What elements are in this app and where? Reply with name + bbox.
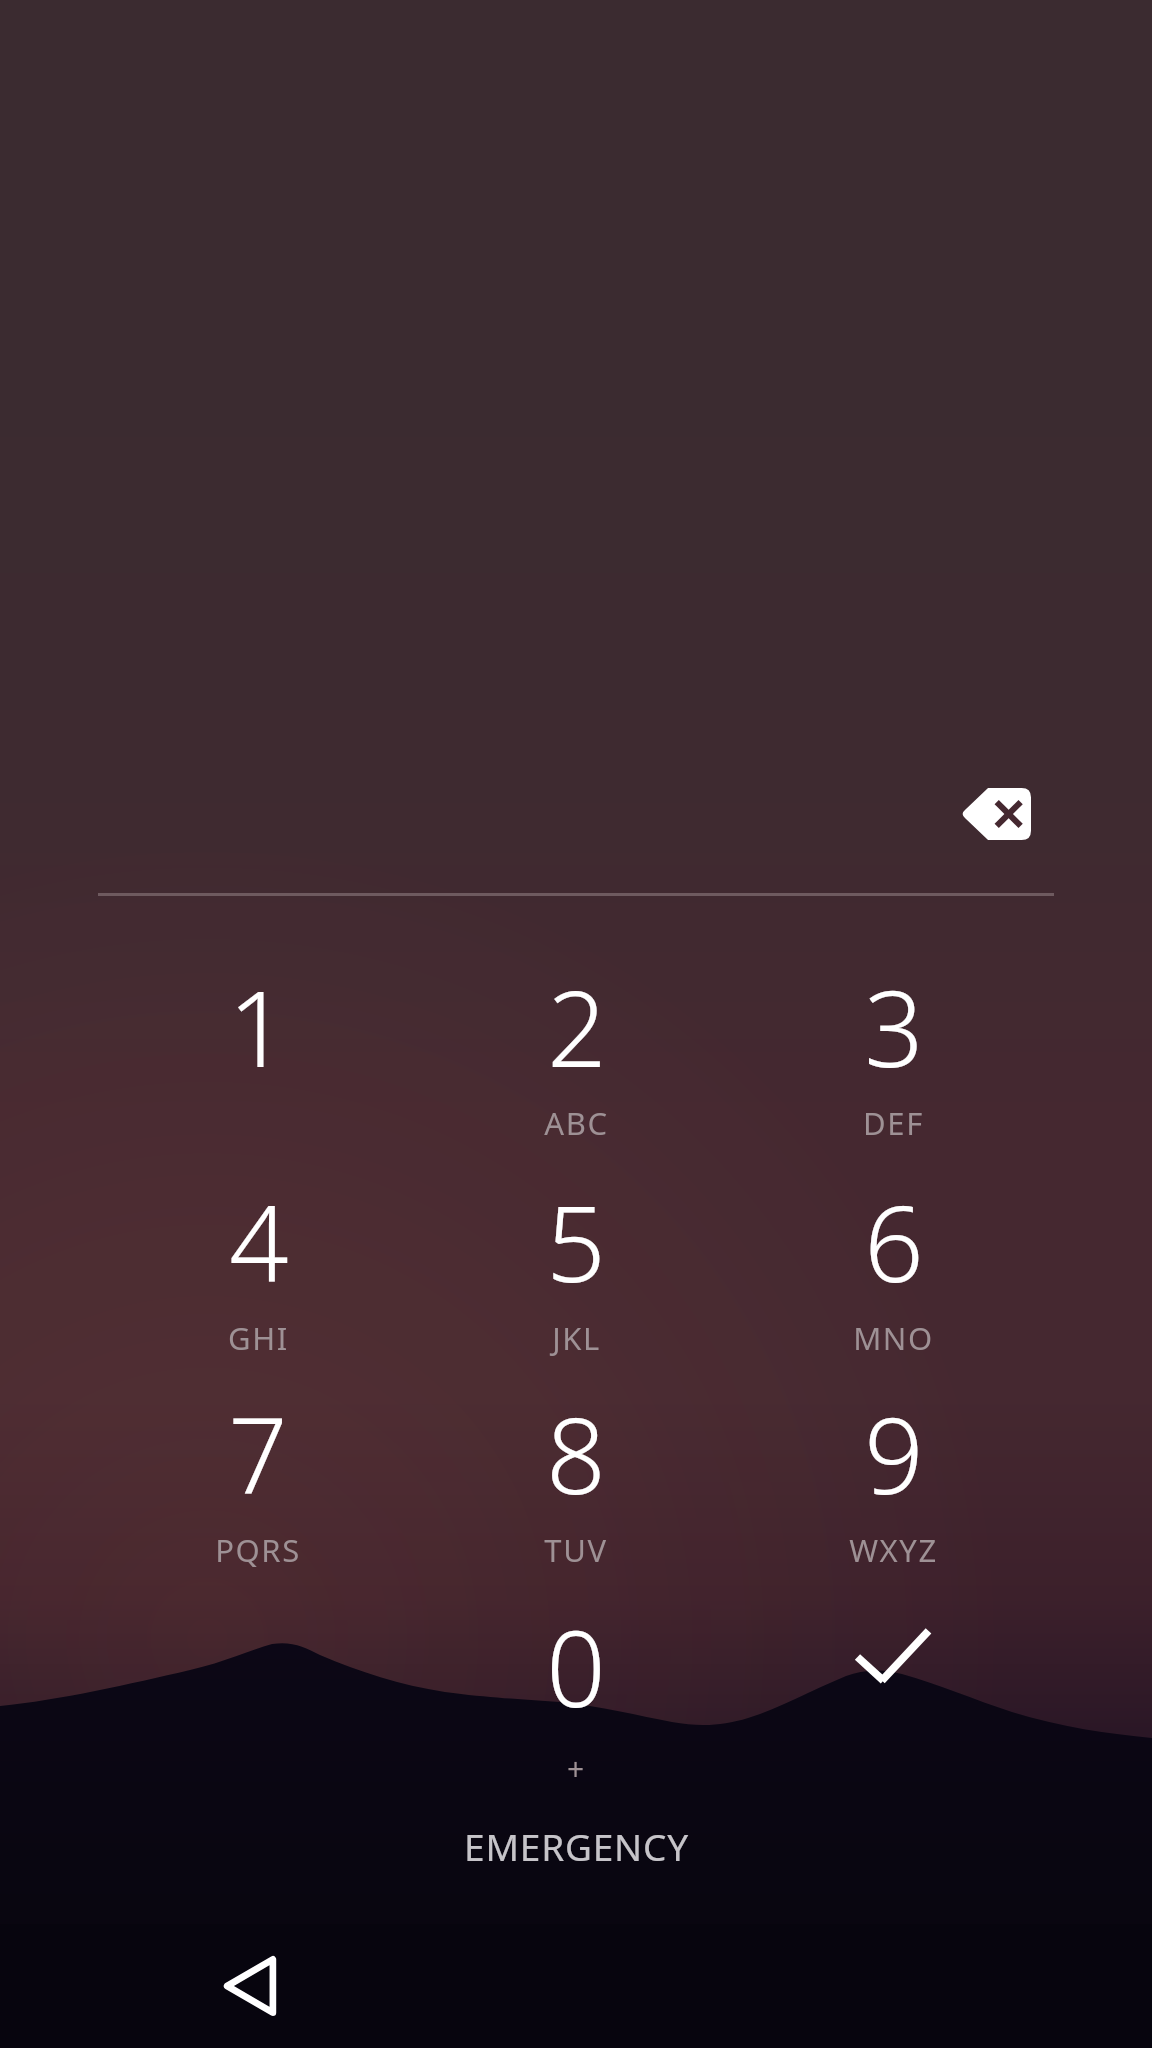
staticText: 8: [546, 1383, 606, 1525]
staticText: GHI: [228, 1317, 289, 1359]
staticText: DEF: [863, 1102, 924, 1144]
button[interactable]: Back: [186, 1924, 314, 2048]
button[interactable]: 2: [426, 956, 726, 1162]
button[interactable]: 7: [108, 1383, 408, 1589]
staticText: 6: [864, 1171, 924, 1313]
button[interactable]: Enter: [743, 1596, 1043, 1802]
staticText: 1: [228, 956, 288, 1098]
button[interactable]: 5: [426, 1171, 726, 1377]
button[interactable]: 0: [426, 1596, 726, 1802]
button[interactable]: 9: [743, 1383, 1043, 1589]
staticText: 4: [229, 1171, 289, 1313]
staticText: 5: [546, 1171, 606, 1313]
button[interactable]: Delete: [916, 762, 1076, 866]
button[interactable]: 3: [743, 956, 1043, 1162]
button[interactable]: 6: [743, 1171, 1043, 1377]
button[interactable]: 8: [426, 1383, 726, 1589]
staticText: EMERGENCY: [464, 1821, 689, 1871]
staticText: MNO: [853, 1317, 934, 1359]
staticText: ABC: [544, 1102, 609, 1144]
staticText: JKL: [552, 1317, 601, 1359]
staticText: 0: [546, 1596, 606, 1738]
staticText: PQRS: [215, 1529, 301, 1571]
button[interactable]: 1: [108, 956, 408, 1162]
staticText: 2: [547, 956, 607, 1098]
staticText: TUV: [544, 1529, 608, 1571]
staticText: +: [567, 1748, 586, 1789]
staticText: 7: [228, 1383, 288, 1525]
button[interactable]: 4: [108, 1171, 408, 1377]
staticText: WXYZ: [849, 1529, 938, 1571]
button[interactable]: EMERGENCY: [0, 1800, 1152, 1892]
staticText: 9: [864, 1383, 924, 1525]
staticText: 3: [864, 956, 924, 1098]
